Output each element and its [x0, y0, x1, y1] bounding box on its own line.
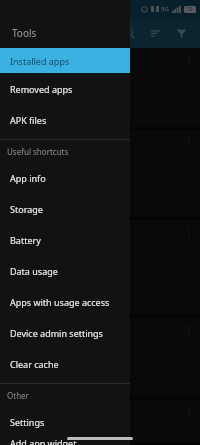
staticText: Tools — [12, 26, 37, 40]
button[interactable]: , date — [0, 220, 200, 315]
staticText: manager, — [6, 58, 41, 69]
staticText: , date — [6, 230, 28, 241]
button[interactable]: Filter — [168, 20, 194, 46]
staticText: Battery — [10, 234, 41, 246]
staticText: pm, — [6, 243, 23, 254]
button[interactable]: Sort — [142, 20, 168, 46]
button[interactable]: manager, — [0, 48, 200, 127]
button[interactable]: Device admin settings — [0, 317, 130, 348]
button[interactable]: Search — [116, 20, 142, 46]
button[interactable]: r — [0, 130, 200, 217]
button[interactable]: Battery — [0, 224, 130, 255]
staticText: Useful shortcuts — [7, 146, 69, 157]
staticText: 54 MB — [6, 269, 30, 280]
staticText: r — [6, 140, 10, 151]
button[interactable]: Clear cache — [0, 348, 130, 379]
staticText: installed: — [6, 410, 40, 421]
button[interactable]: Settings — [0, 406, 130, 437]
staticText: onvert — [6, 153, 31, 164]
button[interactable]: APK files — [0, 104, 130, 135]
staticText: Apps with usage access — [10, 296, 110, 308]
button[interactable]: date — [0, 318, 200, 397]
staticText: stalled — [6, 166, 31, 177]
button[interactable]: Apps with usage access — [0, 286, 130, 317]
staticText: B — [6, 367, 12, 378]
staticText: Installed apps — [10, 55, 70, 67]
staticText: Data usage — [10, 265, 58, 277]
staticText: version — [6, 354, 36, 365]
staticText: Settings — [10, 416, 45, 428]
staticText: Add app widget — [10, 437, 77, 445]
staticText: on — [6, 423, 16, 434]
staticText: Storage — [10, 203, 43, 215]
staticText: 5G — [161, 5, 169, 13]
button[interactable]: App info — [0, 162, 130, 193]
button[interactable]: Removed apps — [0, 73, 130, 104]
staticText: APK files — [10, 114, 47, 126]
staticText: Device admin settings — [10, 327, 103, 339]
button[interactable]: Installed apps — [0, 48, 130, 73]
staticText: 4:43 pm, — [6, 71, 39, 82]
staticText: App info — [10, 172, 46, 184]
staticText: Clear cache — [10, 358, 59, 370]
staticText: Other — [7, 390, 29, 401]
button[interactable]: installed: — [0, 400, 200, 442]
button[interactable]: Add app widget — [0, 437, 130, 445]
staticText: 72 — [187, 6, 193, 13]
staticText: date — [6, 328, 23, 339]
staticText: Removed apps — [10, 83, 73, 95]
staticText: in code: — [6, 179, 36, 190]
button[interactable]: Data usage — [0, 255, 130, 286]
staticText: ame: — [6, 436, 25, 442]
button[interactable]: Storage — [0, 193, 130, 224]
staticText: ame — [6, 84, 23, 95]
